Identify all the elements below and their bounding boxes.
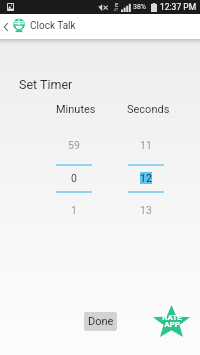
staticText: 1 <box>71 204 77 216</box>
staticText: Set Timer <box>19 77 73 92</box>
staticText: 0 <box>71 172 77 184</box>
staticText: Minutes <box>56 103 96 116</box>
staticText: 4T <box>114 8 119 12</box>
staticText: E <box>115 1 119 8</box>
staticText: Clock Talk <box>30 20 76 32</box>
staticText: RATE <box>162 313 182 322</box>
staticText: 38% <box>133 3 146 11</box>
button[interactable]: Rate App <box>152 305 191 338</box>
staticText: APP <box>164 320 180 329</box>
button[interactable]: Navigate up <box>0 16 11 37</box>
staticText: 11 <box>140 139 152 151</box>
staticText: 59 <box>68 139 80 151</box>
staticText: Seconds <box>127 103 170 116</box>
staticText: 12:37 PM <box>160 2 197 12</box>
staticText: 13 <box>140 204 152 216</box>
staticText: Done <box>88 315 114 328</box>
staticText: 12 <box>140 172 152 184</box>
button[interactable]: Done <box>84 312 117 331</box>
